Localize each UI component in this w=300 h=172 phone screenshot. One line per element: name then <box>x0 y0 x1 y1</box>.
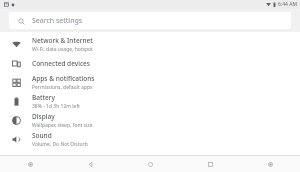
staticText: Permissions, default apps <box>32 84 93 91</box>
staticText: Search settings <box>32 16 83 26</box>
staticText: Display <box>32 112 55 121</box>
staticText: Wi-Fi, data usage, hotspot <box>32 46 93 53</box>
staticText: 6:44 AM <box>278 1 297 8</box>
staticText: Sound <box>32 131 52 140</box>
button[interactable]: Screenshot <box>240 156 300 172</box>
staticText: 38% - 1d 3h 12m left <box>32 103 80 110</box>
staticText: Connected devices <box>32 59 91 68</box>
button[interactable]: Rotate screen <box>0 156 60 172</box>
button[interactable]: Apps & notifications <box>0 73 300 92</box>
staticText: Wallpaper, sleep, font size <box>32 122 93 129</box>
button[interactable]: Home <box>120 156 180 172</box>
button[interactable]: Battery <box>0 92 300 111</box>
staticText: Battery <box>32 93 55 102</box>
button[interactable]: Display <box>0 111 300 130</box>
button[interactable]: Connected devices <box>0 54 300 73</box>
button[interactable]: Search settings <box>9 12 291 29</box>
button[interactable]: Sound <box>0 130 300 149</box>
staticText: Network & Internet <box>32 36 93 45</box>
button[interactable]: Back <box>60 156 120 172</box>
button[interactable]: Recent apps <box>180 156 240 172</box>
staticText: Apps & notifications <box>32 74 95 83</box>
staticText: Volume, Do Not Disturb <box>32 141 88 148</box>
button[interactable]: Network & Internet <box>0 35 300 54</box>
